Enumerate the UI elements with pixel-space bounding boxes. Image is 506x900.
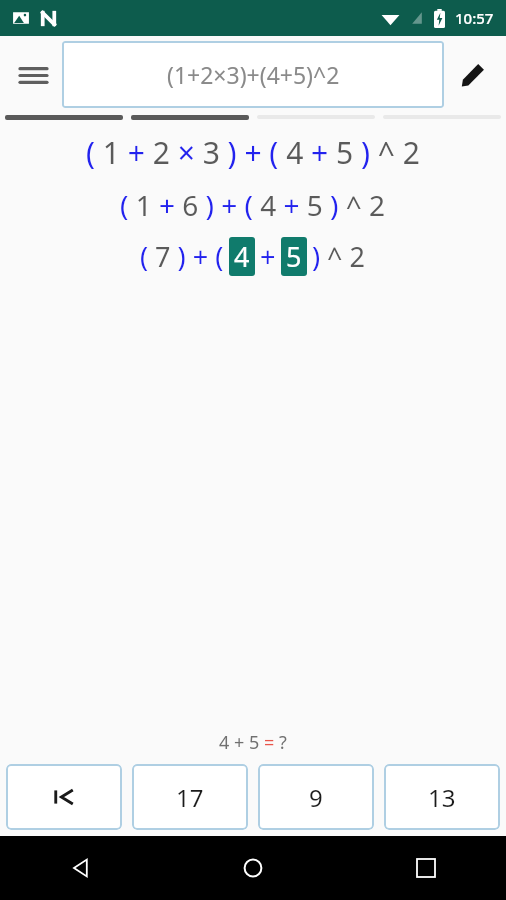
staticText: 4 [234, 238, 250, 275]
button[interactable]: Skip to start [6, 764, 122, 830]
staticText: 10:57 [455, 8, 494, 28]
button[interactable]: 9 [258, 764, 374, 830]
staticText: 5 [286, 238, 302, 275]
staticText: ) ^ 2 [312, 238, 366, 275]
button[interactable]: Menu [4, 46, 62, 104]
button[interactable]: Edit [444, 46, 502, 104]
staticText: 17 [176, 781, 204, 814]
staticText: (1+2×3)+(4+5)^2 [167, 59, 340, 90]
button[interactable]: (1+2×3)+(4+5)^2 [62, 41, 444, 108]
button[interactable]: 17 [132, 764, 248, 830]
button[interactable]: Back [58, 846, 102, 890]
staticText: + [260, 238, 276, 275]
staticText: ( 1 + 2 × 3 ) + ( 4 + 5 ) ^ 2 [86, 132, 420, 173]
staticText: 9 [309, 781, 323, 814]
staticText: 13 [428, 781, 456, 814]
staticText: ( 7 ) + ( [140, 238, 224, 275]
button[interactable]: Home [231, 846, 275, 890]
button[interactable]: Recents [404, 846, 448, 890]
button[interactable]: 13 [384, 764, 500, 830]
staticText: ( 1 + 6 ) + ( 4 + 5 ) ^ 2 [120, 186, 386, 224]
staticText: 4 + 5 = ? [219, 730, 287, 755]
